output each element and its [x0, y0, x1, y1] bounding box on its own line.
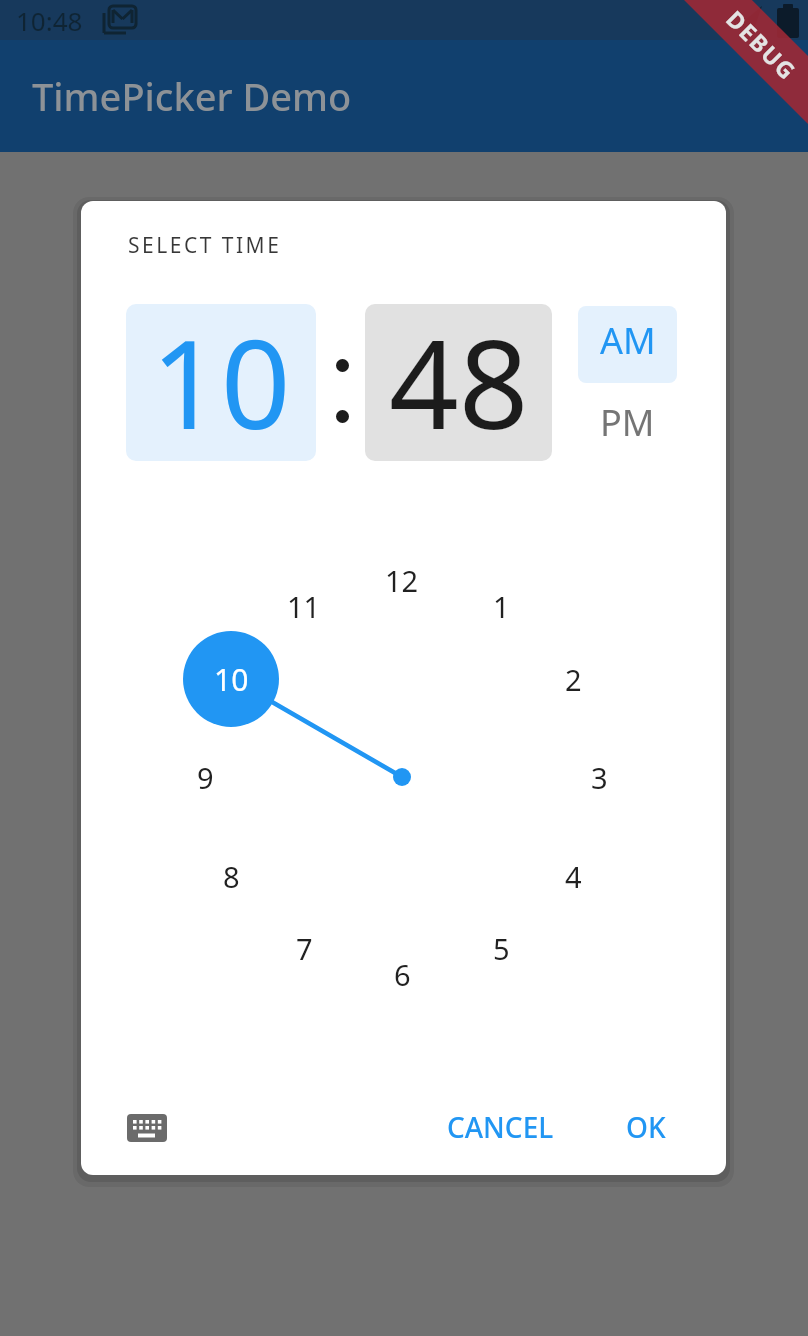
button[interactable]: 9 — [175, 747, 235, 807]
staticText: 9 — [197, 758, 214, 797]
staticText: 1 — [493, 587, 510, 626]
button[interactable]: 6 — [372, 944, 432, 1004]
staticText: 2 — [565, 660, 582, 699]
staticText: PM — [600, 398, 655, 447]
staticText: 3 — [591, 758, 608, 797]
button[interactable]: 7 — [274, 918, 334, 978]
staticText: 7 — [296, 929, 313, 968]
button[interactable]: 5 — [471, 918, 531, 978]
button[interactable]: CANCEL — [435, 1097, 565, 1157]
staticText: AM — [600, 316, 656, 365]
button[interactable]: 8 — [201, 846, 261, 906]
button[interactable]: 3 — [569, 747, 629, 807]
staticText: TimePicker Demo — [32, 70, 352, 122]
staticText: CANCEL — [447, 1108, 554, 1146]
button[interactable]: 2 — [543, 649, 603, 709]
staticText: SELECT TIME — [128, 231, 282, 260]
staticText: DEBUG — [720, 3, 804, 86]
button[interactable]: PM — [578, 383, 677, 461]
staticText: 10 — [151, 304, 291, 456]
button[interactable] — [122, 1103, 172, 1153]
staticText: OK — [626, 1108, 666, 1146]
staticText: 8 — [223, 857, 240, 896]
staticText: 10:48 — [16, 3, 83, 38]
staticText: 10 — [214, 659, 249, 700]
staticText: 5 — [493, 929, 510, 968]
button[interactable]: 10 — [183, 631, 279, 727]
button[interactable]: 4 — [543, 846, 603, 906]
button[interactable]: 12 — [372, 550, 432, 610]
button[interactable]: 10 — [126, 304, 316, 461]
staticText: 4 — [565, 857, 582, 896]
staticText: 48 — [389, 304, 529, 456]
button[interactable]: 1 — [471, 576, 531, 636]
button[interactable]: OK — [606, 1097, 686, 1157]
staticText: 11 — [287, 587, 321, 626]
button[interactable]: AM — [578, 306, 677, 383]
button[interactable]: 48 — [365, 304, 552, 461]
button[interactable]: 11 — [274, 576, 334, 636]
staticText: 12 — [385, 561, 419, 600]
staticText: 6 — [394, 955, 411, 994]
